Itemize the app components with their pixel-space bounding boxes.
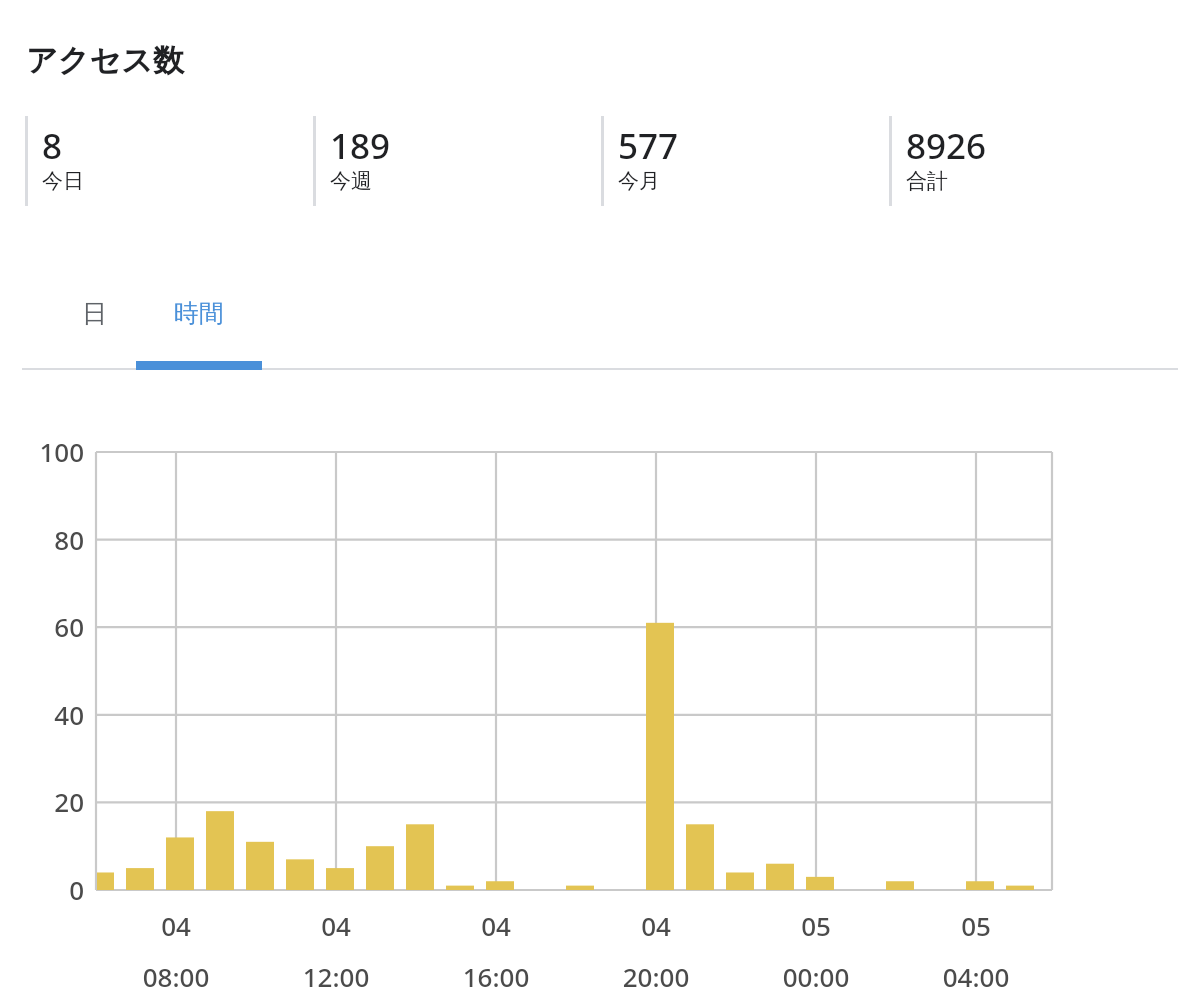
button[interactable]: 189 bbox=[313, 116, 593, 208]
staticText: 08:00 bbox=[96, 959, 256, 994]
staticText: 189 bbox=[330, 122, 391, 170]
staticText: 04 bbox=[96, 908, 256, 943]
staticText: 20:00 bbox=[576, 959, 736, 994]
staticText: 80 bbox=[6, 522, 84, 557]
staticText: 40 bbox=[6, 697, 84, 732]
staticText: 04:00 bbox=[896, 959, 1056, 994]
button[interactable]: 日 bbox=[52, 278, 136, 370]
staticText: 100 bbox=[6, 434, 84, 469]
staticText: 577 bbox=[618, 122, 679, 170]
staticText: 今日 bbox=[42, 168, 84, 194]
button[interactable]: 時間 bbox=[136, 278, 262, 370]
button[interactable]: 577 bbox=[601, 116, 881, 208]
staticText: 8 bbox=[42, 122, 63, 170]
staticText: 00:00 bbox=[736, 959, 896, 994]
staticText: 合計 bbox=[906, 168, 948, 194]
staticText: 今週 bbox=[330, 168, 372, 194]
staticText: 8926 bbox=[906, 122, 987, 170]
staticText: 04 bbox=[416, 908, 576, 943]
staticText: アクセス数 bbox=[26, 41, 184, 80]
staticText: 04 bbox=[576, 908, 736, 943]
staticText: 04 bbox=[256, 908, 416, 943]
staticText: 今月 bbox=[618, 168, 660, 194]
staticText: 20 bbox=[6, 784, 84, 819]
staticText: 12:00 bbox=[256, 959, 416, 994]
staticText: 05 bbox=[736, 908, 896, 943]
staticText: 16:00 bbox=[416, 959, 576, 994]
staticText: 60 bbox=[6, 609, 84, 644]
button[interactable]: 8926 bbox=[889, 116, 1169, 208]
staticText: 0 bbox=[6, 872, 84, 907]
staticText: 時間 bbox=[174, 298, 224, 329]
button[interactable]: 8 bbox=[25, 116, 305, 208]
staticText: 05 bbox=[896, 908, 1056, 943]
staticText: 日 bbox=[82, 298, 107, 329]
